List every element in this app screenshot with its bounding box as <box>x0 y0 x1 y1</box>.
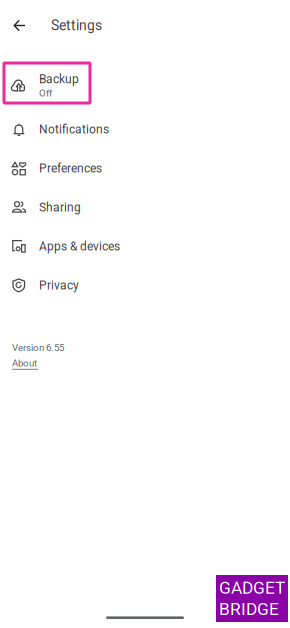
staticText: Version 6.55 <box>12 342 64 353</box>
staticText: Sharing <box>39 200 81 215</box>
button[interactable]: Backup <box>0 51 290 110</box>
staticText: BRIDGE <box>219 599 279 619</box>
staticText: Privacy <box>39 278 79 293</box>
button[interactable]: Privacy <box>0 266 290 305</box>
button[interactable]: Back <box>0 10 51 40</box>
button[interactable]: Notifications <box>0 110 290 149</box>
staticText: About <box>12 357 37 369</box>
staticText: Settings <box>51 17 102 34</box>
staticText: Backup <box>39 72 79 86</box>
button[interactable]: Apps & devices <box>0 227 290 266</box>
button[interactable]: Sharing <box>0 188 290 227</box>
staticText: Preferences <box>39 161 102 176</box>
staticText: GADGET <box>219 578 285 598</box>
button[interactable]: Preferences <box>0 149 290 188</box>
staticText: Off <box>39 87 52 99</box>
button[interactable]: About <box>12 357 38 370</box>
staticText: Notifications <box>39 122 109 137</box>
staticText: Apps & devices <box>39 239 120 254</box>
